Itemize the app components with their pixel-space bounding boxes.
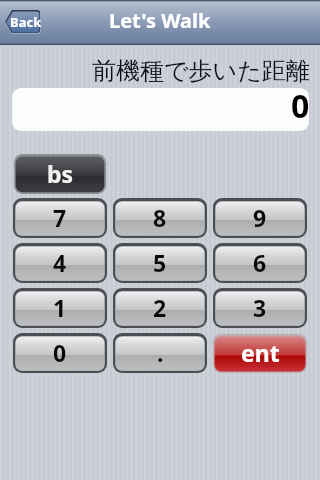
- button[interactable]: 5: [113, 243, 207, 283]
- staticText: 0: [53, 337, 67, 368]
- staticText: bs: [47, 158, 74, 189]
- button[interactable]: 9: [213, 198, 307, 238]
- staticText: 5: [153, 247, 167, 278]
- staticText: 7: [53, 202, 67, 233]
- staticText: 前機種で歩いた距離: [92, 56, 310, 86]
- button[interactable]: Back: [5, 10, 41, 34]
- staticText: 2: [153, 292, 167, 323]
- staticText: 1: [53, 292, 67, 323]
- staticText: 4: [53, 247, 67, 278]
- staticText: Let's Walk: [109, 7, 211, 34]
- staticText: Back: [10, 13, 42, 31]
- staticText: 8: [153, 202, 167, 233]
- button[interactable]: 3: [213, 288, 307, 328]
- button[interactable]: 6: [213, 243, 307, 283]
- staticText: 3: [253, 292, 267, 323]
- button[interactable]: 1: [13, 288, 107, 328]
- button[interactable]: 7: [13, 198, 107, 238]
- button[interactable]: 4: [13, 243, 107, 283]
- button[interactable]: 0: [12, 88, 309, 131]
- button[interactable]: 2: [113, 288, 207, 328]
- staticText: 0: [291, 88, 309, 127]
- staticText: ent: [241, 337, 280, 368]
- button[interactable]: 8: [113, 198, 207, 238]
- staticText: .: [157, 337, 164, 368]
- button[interactable]: bs: [14, 154, 106, 194]
- staticText: 6: [253, 247, 267, 278]
- button[interactable]: .: [113, 333, 207, 373]
- button[interactable]: ent: [213, 334, 307, 373]
- staticText: 9: [253, 202, 267, 233]
- button[interactable]: 0: [13, 333, 107, 373]
